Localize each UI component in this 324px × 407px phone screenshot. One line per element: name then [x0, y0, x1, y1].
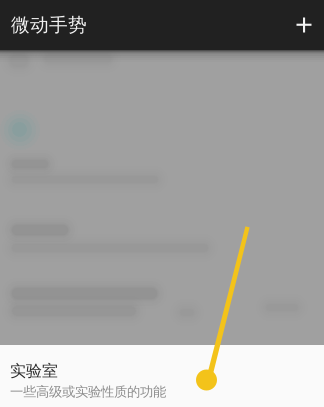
- staticText: 一些高级或实验性质的功能: [10, 384, 166, 400]
- staticText: 微动手势: [11, 13, 87, 36]
- button[interactable]: Add: [283, 4, 324, 46]
- button[interactable]: 实验室: [0, 345, 324, 407]
- staticText: 实验室: [10, 361, 58, 381]
